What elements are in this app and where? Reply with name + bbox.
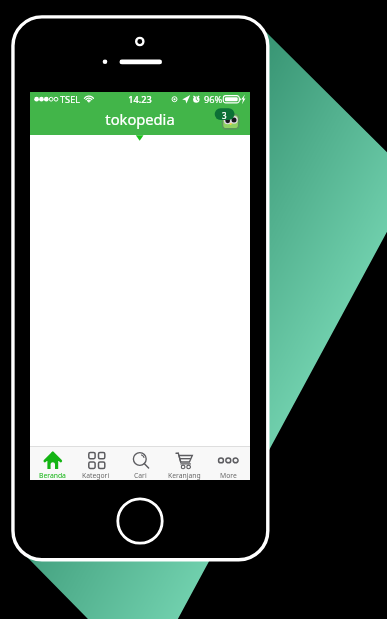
button[interactable]: Keranjang	[162, 447, 206, 480]
staticText: Keranjang	[168, 471, 201, 480]
button[interactable]: Cari	[118, 447, 162, 480]
staticText: 3	[222, 110, 227, 121]
staticText: Kategori	[82, 471, 110, 480]
staticText: TSEL	[60, 93, 81, 106]
button[interactable]: More	[206, 447, 250, 480]
button[interactable]: Beranda	[30, 447, 74, 480]
staticText: Beranda	[39, 471, 66, 480]
staticText: 14.23	[30, 93, 250, 106]
button[interactable]: Kategori	[74, 447, 118, 480]
button[interactable]: Shopping cart, 3 items	[214, 108, 240, 131]
staticText: Cari	[134, 471, 147, 480]
staticText: More	[220, 471, 237, 480]
staticText: 96%	[204, 93, 223, 106]
staticText: tokopedia	[30, 109, 250, 129]
